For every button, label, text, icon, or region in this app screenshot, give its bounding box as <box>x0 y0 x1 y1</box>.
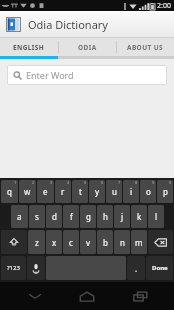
staticText: n <box>120 237 125 248</box>
button[interactable]: Backspace <box>148 230 173 254</box>
button[interactable]: c <box>63 230 79 254</box>
button[interactable]: k <box>131 205 147 228</box>
staticText: g <box>86 211 91 222</box>
button[interactable]: r <box>55 180 71 203</box>
staticText: 0 <box>169 180 172 185</box>
staticText: 5 <box>84 180 87 185</box>
button[interactable]: h <box>97 205 113 228</box>
staticText: s <box>35 211 39 222</box>
staticText: ENGLISH <box>13 43 45 52</box>
staticText: h <box>103 211 108 222</box>
staticText: 6 <box>101 180 104 185</box>
staticText: 1 <box>14 180 17 185</box>
button[interactable]: w <box>19 180 36 203</box>
button[interactable]: . <box>127 256 145 280</box>
button[interactable]: q <box>1 180 18 203</box>
staticText: d <box>52 211 57 222</box>
button[interactable]: e <box>37 180 54 203</box>
staticText: b <box>103 237 108 248</box>
staticText: . <box>135 263 138 274</box>
button[interactable]: s <box>29 205 45 228</box>
button[interactable]: n <box>114 230 130 254</box>
staticText: c <box>69 237 73 248</box>
button[interactable]: m <box>131 230 147 254</box>
staticText: q <box>7 186 12 197</box>
staticText: f <box>70 211 73 222</box>
button[interactable]: Shift <box>1 230 27 254</box>
staticText: k <box>137 211 142 222</box>
staticText: w <box>24 186 31 197</box>
button[interactable]: y <box>89 180 105 203</box>
staticText: ODIA <box>78 43 97 52</box>
button[interactable]: v <box>80 230 96 254</box>
button[interactable]: u <box>106 180 122 203</box>
staticText: x <box>52 237 57 248</box>
staticText: m <box>135 237 143 248</box>
button[interactable]: x <box>46 230 62 254</box>
button[interactable]: a <box>11 205 28 228</box>
staticText: 7 <box>118 180 121 185</box>
staticText: ABOUT US <box>127 43 164 52</box>
staticText: ?123 <box>7 264 20 272</box>
staticText: l <box>155 211 158 222</box>
staticText: p <box>163 186 168 197</box>
staticText: Odia Dictionary <box>28 17 108 32</box>
staticText: i <box>130 186 133 197</box>
button[interactable]: Enter Word <box>7 65 167 85</box>
staticText: Done <box>152 264 168 272</box>
button[interactable]: z <box>28 230 45 254</box>
staticText: z <box>35 237 39 248</box>
staticText: 9 <box>152 180 155 185</box>
button[interactable]: o <box>140 180 156 203</box>
staticText: t <box>79 186 82 197</box>
staticText: e <box>43 186 48 197</box>
staticText: 8 <box>135 180 138 185</box>
button[interactable]: p <box>157 180 173 203</box>
button[interactable]: Voice input <box>27 256 45 280</box>
button[interactable]: ABOUT US <box>117 38 174 56</box>
button[interactable]: Done <box>146 256 173 280</box>
button[interactable]: ?123 <box>1 256 26 280</box>
button[interactable]: i <box>123 180 139 203</box>
button[interactable]: j <box>114 205 130 228</box>
staticText: u <box>112 186 117 197</box>
staticText: 4 <box>67 180 70 185</box>
button[interactable]: Home <box>69 284 105 308</box>
staticText: j <box>121 211 124 222</box>
button[interactable]: t <box>72 180 88 203</box>
button[interactable]: Back <box>17 284 53 308</box>
staticText: v <box>86 237 91 248</box>
button[interactable]: b <box>97 230 113 254</box>
staticText: 2:00 <box>157 1 171 11</box>
staticText: y <box>95 186 100 197</box>
button[interactable]: f <box>63 205 79 228</box>
button[interactable]: Recent apps <box>122 284 158 308</box>
button[interactable]: d <box>46 205 62 228</box>
staticText: Enter Word <box>26 69 74 81</box>
staticText: a <box>17 211 22 222</box>
button[interactable]: l <box>148 205 164 228</box>
staticText: 2 <box>32 180 35 185</box>
staticText: 3 <box>50 180 53 185</box>
button[interactable]: ODIA <box>59 38 116 56</box>
staticText: r <box>61 186 65 197</box>
button[interactable]: ENGLISH <box>0 38 58 56</box>
staticText: o <box>146 186 151 197</box>
button[interactable]: g <box>80 205 96 228</box>
